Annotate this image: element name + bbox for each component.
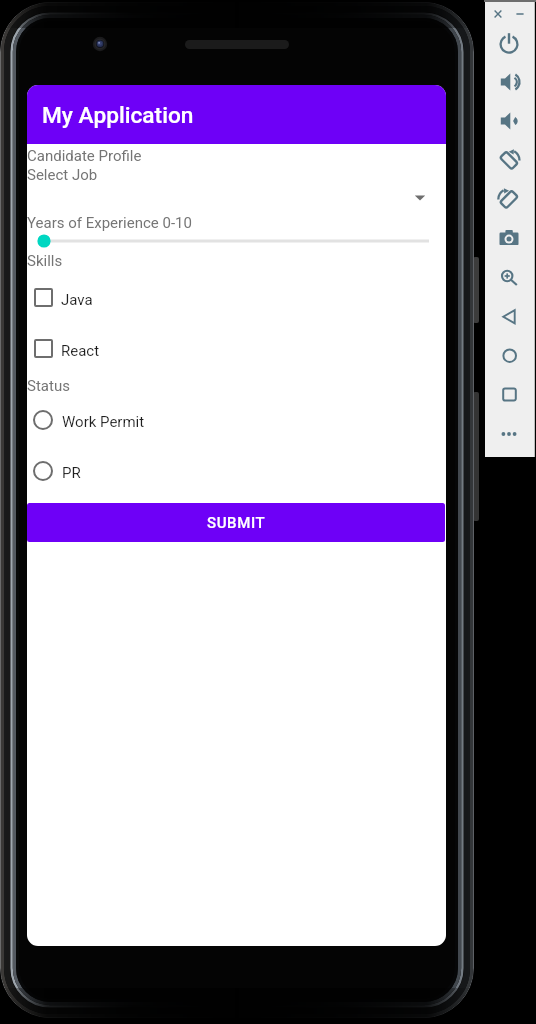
staticText: Java [61, 291, 93, 309]
button[interactable]: Years of experience slider [27, 231, 446, 251]
staticText: React [61, 342, 100, 360]
button[interactable]: Close [487, 3, 509, 25]
button[interactable]: Work Permit [27, 400, 446, 440]
button[interactable]: Minimize [509, 3, 531, 25]
staticText: My Application [42, 102, 194, 129]
staticText: Years of Experience 0-10 [27, 214, 192, 232]
staticText: Select Job [27, 166, 98, 184]
button[interactable]: Rotate left [497, 148, 521, 172]
button[interactable]: Overview [497, 382, 521, 406]
staticText: SUBMIT [207, 514, 266, 532]
button[interactable]: PR [27, 451, 446, 491]
staticText: Skills [27, 252, 63, 270]
button[interactable]: Volume up [497, 70, 521, 94]
button[interactable]: Java [27, 278, 446, 317]
button[interactable]: Zoom [497, 265, 521, 289]
button[interactable]: Power [497, 31, 521, 55]
button[interactable]: Rotate right [497, 187, 521, 211]
button[interactable]: My Application [27, 85, 446, 144]
button[interactable]: Volume down [497, 109, 521, 133]
button[interactable]: SUBMIT [27, 503, 445, 542]
button[interactable]: React [27, 329, 446, 368]
button[interactable]: Back [497, 304, 521, 328]
staticText: Status [27, 377, 70, 395]
button[interactable]: Open job dropdown [408, 186, 432, 210]
staticText: PR [62, 464, 81, 482]
button[interactable]: More [497, 422, 521, 446]
staticText: Candidate Profile [27, 147, 142, 165]
button[interactable]: Home [497, 343, 521, 367]
button[interactable]: Take screenshot [497, 226, 521, 250]
staticText: Work Permit [62, 413, 145, 431]
